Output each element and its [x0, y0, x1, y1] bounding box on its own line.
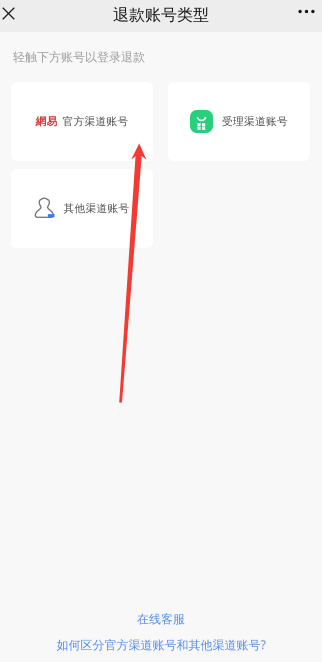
button[interactable]: 其他渠道账号 [11, 169, 153, 248]
staticText: 受理渠道账号 [222, 115, 288, 128]
button[interactable]: 在线客服 [137, 612, 185, 627]
staticText: 在线客服 [137, 612, 185, 627]
staticText: 退款账号类型 [113, 5, 209, 25]
staticText: 官方渠道账号 [62, 115, 128, 128]
button[interactable]: 关闭 [0, 0, 32, 30]
staticText: 如何区分官方渠道账号和其他渠道账号? [56, 637, 265, 653]
staticText: 網易 [35, 115, 57, 128]
staticText: 其他渠道账号 [63, 202, 129, 215]
button[interactable]: 網易 [11, 82, 153, 161]
button[interactable]: 如何区分官方渠道账号和其他渠道账号? [56, 637, 265, 653]
button[interactable]: 受理渠道账号 [168, 82, 310, 161]
staticText: 轻触下方账号以登录退款 [13, 50, 145, 65]
button[interactable]: 更多 [290, 0, 322, 30]
